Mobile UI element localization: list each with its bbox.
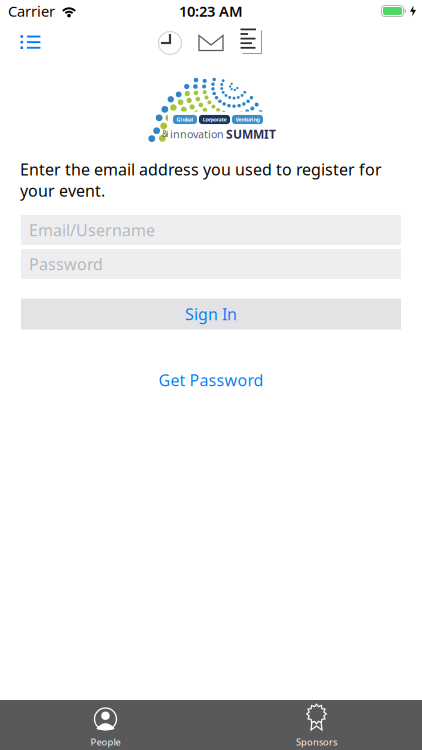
staticText: 10:23 AM bbox=[179, 1, 243, 21]
staticText: People bbox=[90, 736, 120, 748]
staticText: Venturing bbox=[235, 116, 259, 123]
button[interactable]: Notes bbox=[238, 26, 265, 57]
staticText: Enter the email address you used to regi… bbox=[20, 159, 382, 180]
button[interactable]: Email/Username bbox=[21, 215, 401, 245]
button[interactable]: Sponsors bbox=[211, 700, 422, 750]
staticText: your event. bbox=[20, 180, 105, 201]
staticText: Carrier bbox=[8, 1, 55, 21]
button[interactable]: People bbox=[0, 700, 211, 750]
staticText: Sponsors bbox=[296, 736, 337, 748]
button[interactable]: Sign In bbox=[21, 298, 401, 329]
button[interactable]: Get Password bbox=[158, 369, 263, 391]
staticText: SUMMIT bbox=[226, 126, 276, 142]
staticText: innovation bbox=[170, 127, 224, 141]
button[interactable]: Password bbox=[21, 249, 401, 279]
button[interactable]: Schedule bbox=[154, 27, 185, 58]
staticText: Corporate bbox=[202, 116, 226, 123]
button[interactable]: Menu bbox=[12, 26, 49, 58]
button[interactable]: Messages bbox=[193, 29, 229, 56]
staticText: Get Password bbox=[158, 369, 263, 391]
staticText: & bbox=[162, 129, 168, 139]
staticText: Global bbox=[176, 116, 193, 123]
staticText: Email/Username bbox=[29, 219, 155, 241]
staticText: Password bbox=[29, 253, 103, 275]
staticText: Sign In bbox=[185, 303, 237, 325]
